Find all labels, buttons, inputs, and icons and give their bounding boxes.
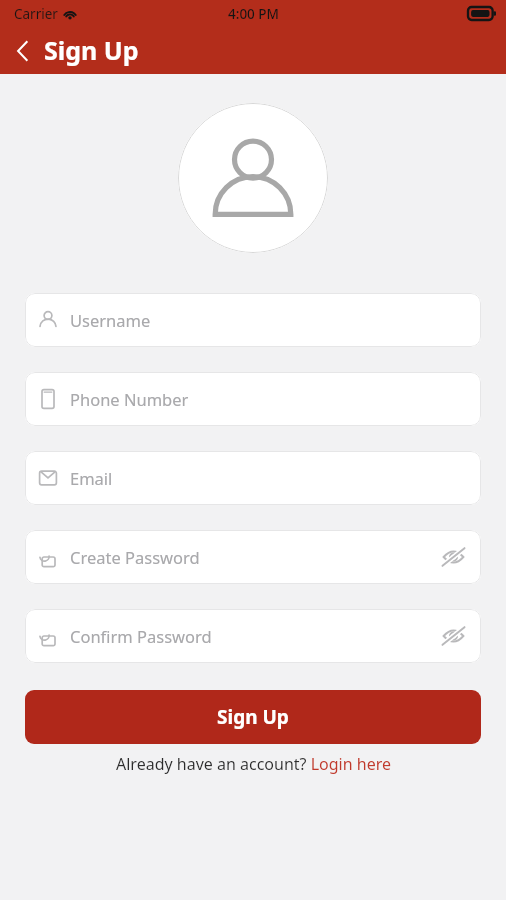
staticText: Email (70, 467, 468, 489)
staticText: Username (70, 309, 468, 331)
button[interactable]: Back (0, 27, 44, 74)
staticText: Sign Up (44, 33, 139, 67)
staticText: Already have an account? Login here (116, 753, 391, 775)
button[interactable]: Show password (438, 621, 468, 651)
staticText: Confirm Password (70, 625, 438, 647)
button[interactable]: Profile picture (178, 103, 328, 253)
button[interactable]: Email (25, 451, 481, 505)
staticText: Phone Number (70, 388, 468, 410)
staticText: 4:00 PM (228, 5, 279, 23)
button[interactable]: Already have an account? Login here (25, 753, 481, 775)
button[interactable]: Username (25, 293, 481, 347)
staticText: Carrier (14, 5, 58, 23)
button[interactable]: Show password (438, 542, 468, 572)
button[interactable]: Confirm Password (25, 609, 481, 663)
button[interactable]: Create Password (25, 530, 481, 584)
staticText: Sign Up (217, 704, 289, 730)
button[interactable]: Sign Up (25, 690, 481, 744)
button[interactable]: Phone Number (25, 372, 481, 426)
staticText: Create Password (70, 546, 438, 568)
